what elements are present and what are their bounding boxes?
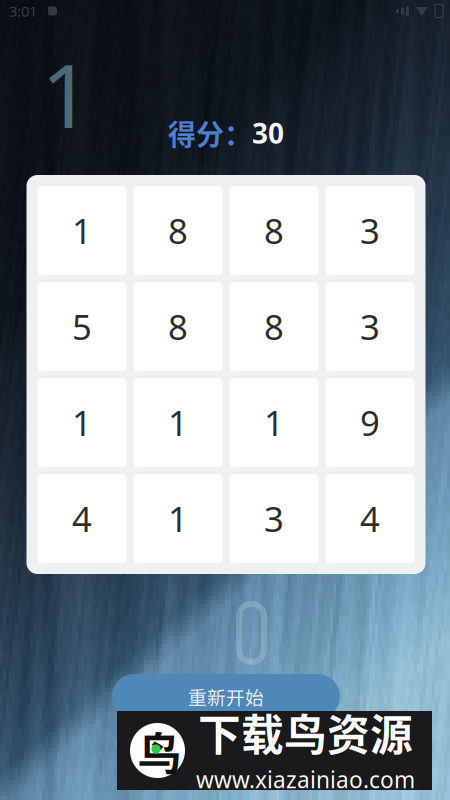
staticText: 4 (360, 495, 380, 542)
staticText: 得分： (168, 113, 252, 153)
staticText: 1 (264, 399, 284, 446)
staticText: 下载鸟资源 (198, 701, 413, 763)
staticText: 5 (72, 303, 92, 350)
button[interactable]: 重新开始 (112, 674, 340, 719)
staticText: 8 (264, 207, 284, 254)
staticText: 1 (72, 207, 92, 254)
staticText: 30 (252, 114, 284, 152)
staticText: 3 (360, 303, 380, 350)
staticText: 1 (168, 399, 188, 446)
staticText: 3 (360, 207, 380, 254)
staticText: 1 (41, 34, 91, 154)
staticText: 3 (264, 495, 284, 542)
staticText: 3:01 (9, 1, 37, 21)
staticText: 鸟 (137, 719, 181, 783)
staticText: www.xiazainiao.com (196, 764, 415, 795)
staticText: 8 (168, 303, 188, 350)
staticText: 1 (168, 495, 188, 542)
staticText: 8 (264, 303, 284, 350)
staticText: 重新开始 (188, 683, 264, 710)
staticText: 4 (72, 495, 92, 542)
staticText: 8 (168, 207, 188, 254)
staticText: 9 (360, 399, 380, 446)
staticText: 1 (72, 399, 92, 446)
